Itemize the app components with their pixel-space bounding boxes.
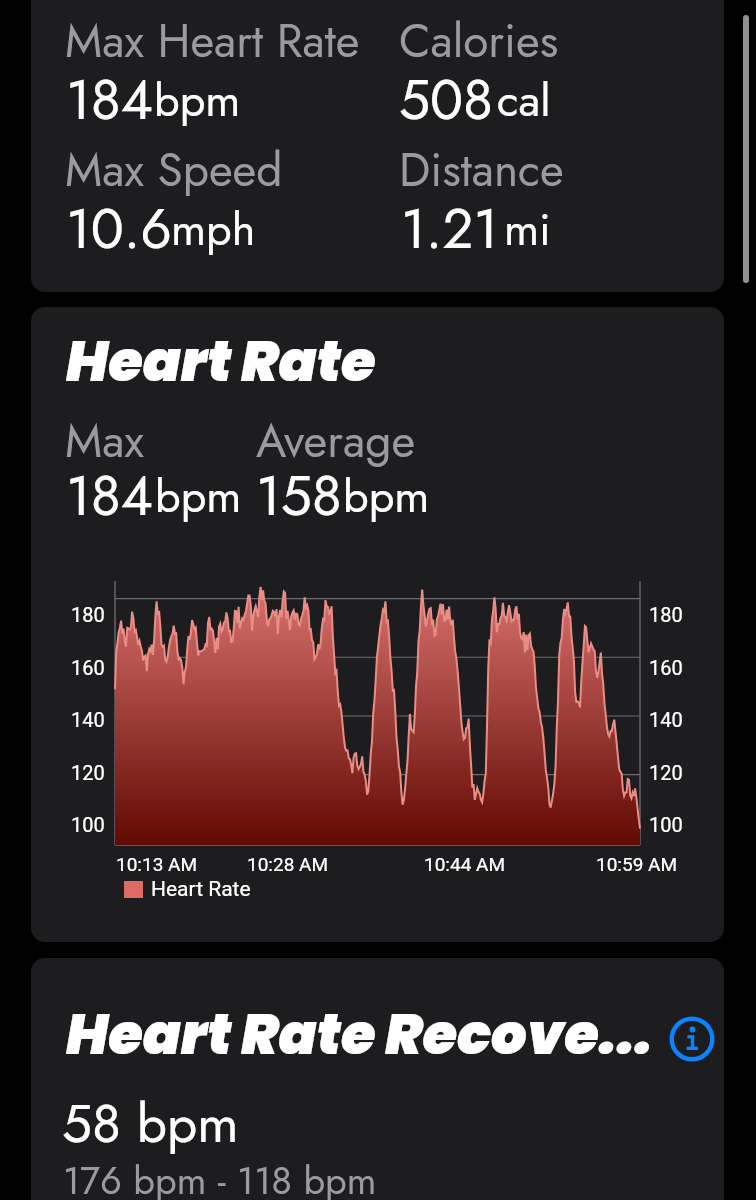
- button[interactable]: Heart Rate Recove...: [31, 958, 724, 1200]
- staticText: Max Speed: [65, 137, 283, 203]
- staticText: 176 bpm - 118 bpm: [63, 1153, 377, 1200]
- staticText: Max: [65, 408, 144, 474]
- staticText: Heart Rate: [66, 322, 376, 400]
- staticText: bpm: [343, 464, 430, 529]
- staticText: 140: [649, 708, 683, 731]
- staticText: cal: [497, 68, 551, 133]
- staticText: 160: [649, 656, 683, 679]
- staticText: 120: [649, 761, 683, 784]
- staticText: 10:44 AM: [424, 853, 506, 875]
- staticText: 508: [399, 60, 494, 139]
- staticText: 158: [256, 456, 342, 535]
- staticText: 180: [71, 603, 105, 626]
- button[interactable]: Heart Rate: [31, 307, 724, 942]
- staticText: 10:13 AM: [116, 853, 198, 875]
- button[interactable]: Info: [667, 1014, 717, 1064]
- staticText: 10:28 AM: [247, 853, 329, 875]
- staticText: 180: [649, 603, 683, 626]
- staticText: Distance: [399, 137, 564, 203]
- staticText: 160: [71, 656, 105, 679]
- staticText: 120: [71, 761, 105, 784]
- staticText: Calories: [399, 8, 559, 74]
- button[interactable]: Max Heart Rate: [31, 0, 724, 292]
- staticText: Heart Rate Recove...: [66, 995, 653, 1073]
- staticText: Heart Rate: [151, 877, 251, 902]
- staticText: 140: [71, 708, 105, 731]
- staticText: 10.6: [66, 189, 172, 268]
- staticText: 58 bpm: [62, 1085, 239, 1162]
- staticText: Max Heart Rate: [65, 8, 360, 74]
- staticText: mph: [171, 197, 256, 262]
- staticText: bpm: [154, 68, 241, 133]
- staticText: 10:59 AM: [596, 853, 678, 875]
- staticText: mi: [504, 197, 551, 262]
- staticText: bpm: [155, 464, 242, 529]
- staticText: 100: [649, 813, 683, 836]
- staticText: Average: [256, 408, 416, 474]
- staticText: 184: [66, 456, 153, 535]
- staticText: 184: [66, 60, 153, 139]
- staticText: 100: [71, 813, 105, 836]
- staticText: 1.21: [401, 189, 499, 268]
